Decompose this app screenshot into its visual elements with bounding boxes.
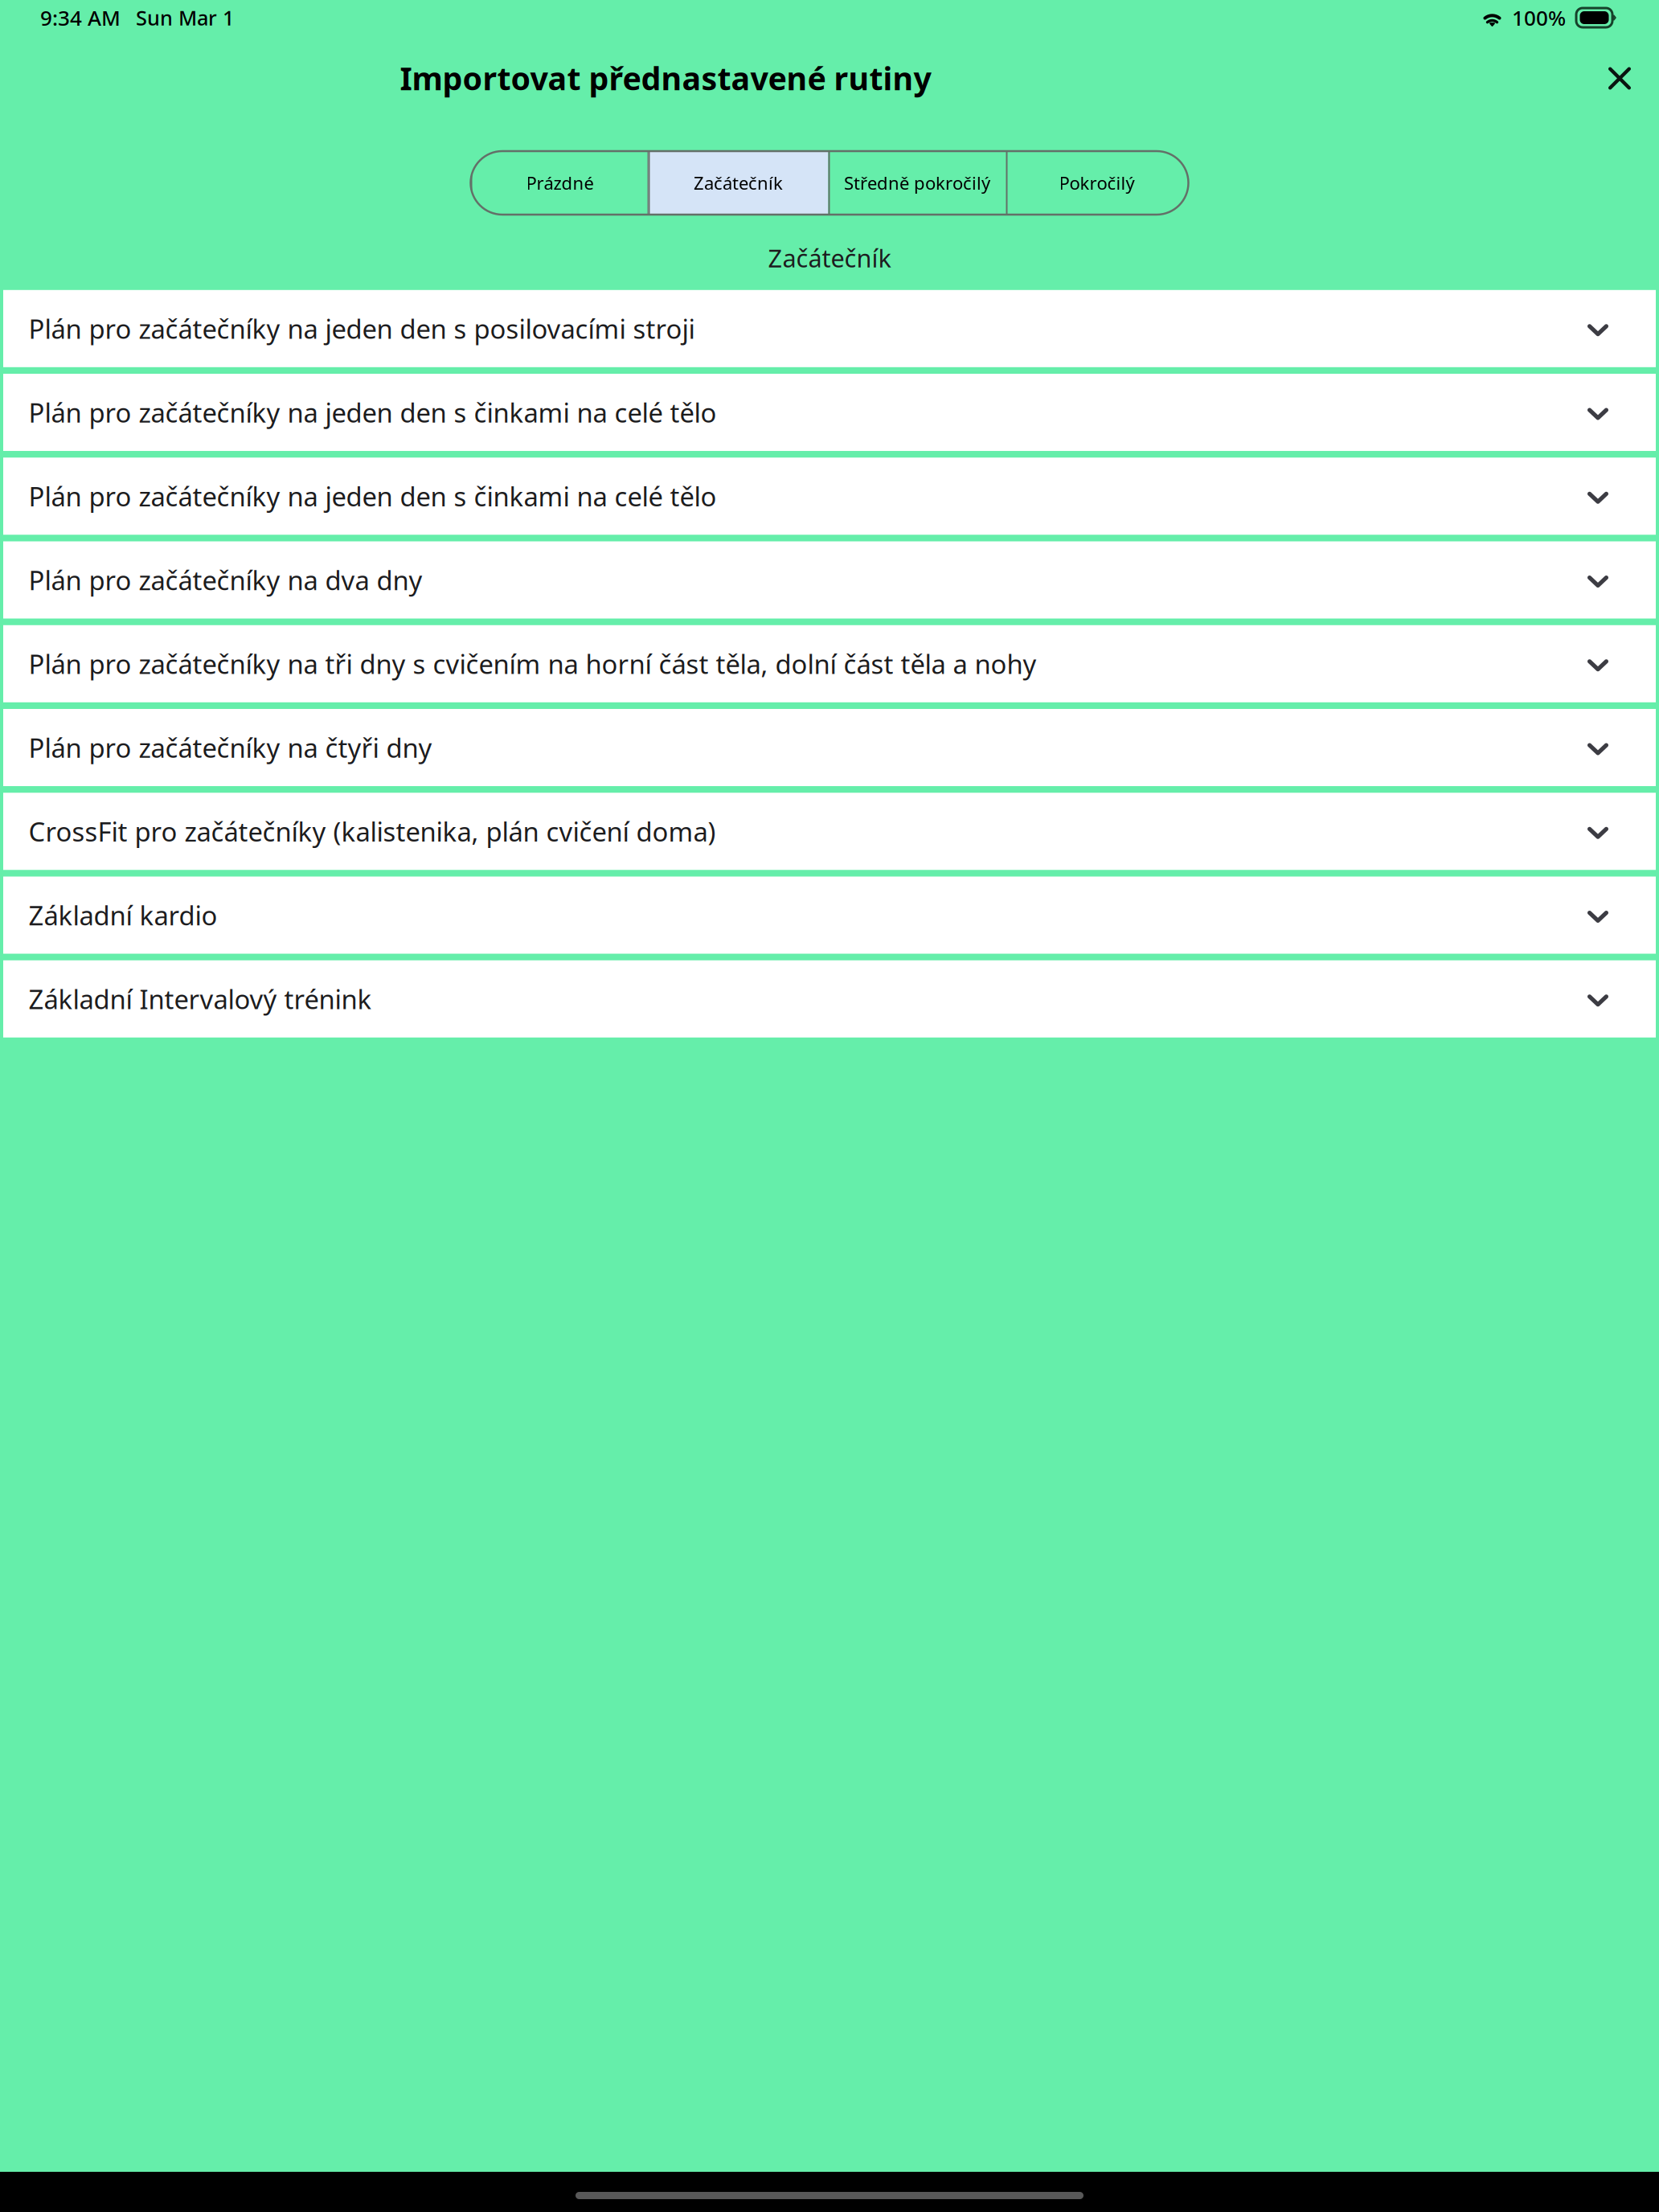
staticText: Plán pro začátečníky na tři dny s cvičen… — [29, 646, 1036, 682]
staticText: Prázdné — [526, 171, 594, 195]
staticText: Plán pro začátečníky na jeden den s posi… — [29, 311, 695, 347]
staticText: Plán pro začátečníky na čtyři dny — [29, 730, 432, 766]
staticText: Začátečník — [768, 241, 891, 275]
staticText: Středně pokročilý — [844, 171, 990, 195]
button[interactable]: Pokročilý — [1006, 151, 1188, 215]
button[interactable]: Základní Intervalový trénink — [3, 960, 1656, 1038]
staticText: 9:34 AM — [40, 3, 121, 32]
button[interactable]: Zavřít — [1585, 44, 1654, 113]
button[interactable]: Středně pokročilý — [828, 151, 1006, 215]
button[interactable]: Plán pro začátečníky na dva dny — [3, 541, 1656, 619]
staticText: Plán pro začátečníky na jeden den s čink… — [29, 478, 717, 514]
button[interactable]: Prázdné — [471, 151, 648, 215]
staticText: Plán pro začátečníky na dva dny — [29, 562, 422, 598]
staticText: CrossFit pro začátečníky (kalistenika, p… — [29, 813, 716, 849]
staticText: Základní kardio — [29, 897, 217, 933]
button[interactable]: Plán pro začátečníky na jeden den s čink… — [3, 458, 1656, 535]
button[interactable]: Plán pro začátečníky na tři dny s cvičen… — [3, 625, 1656, 702]
button[interactable]: Plán pro začátečníky na jeden den s posi… — [3, 290, 1656, 367]
staticText: Plán pro začátečníky na jeden den s čink… — [29, 394, 717, 430]
button[interactable]: Plán pro začátečníky na jeden den s čink… — [3, 374, 1656, 451]
button[interactable]: CrossFit pro začátečníky (kalistenika, p… — [3, 793, 1656, 870]
staticText: Sun Mar 1 — [136, 4, 234, 32]
staticText: Začátečník — [694, 171, 783, 195]
staticText: Pokročilý — [1059, 171, 1135, 195]
staticText: Importovat přednastavené rutiny — [400, 56, 931, 100]
button[interactable]: Plán pro začátečníky na čtyři dny — [3, 709, 1656, 786]
button[interactable]: Základní kardio — [3, 877, 1656, 954]
staticText: 100% — [1512, 3, 1566, 32]
button[interactable]: Začátečník — [648, 151, 828, 215]
staticText: Základní Intervalový trénink — [29, 981, 372, 1017]
